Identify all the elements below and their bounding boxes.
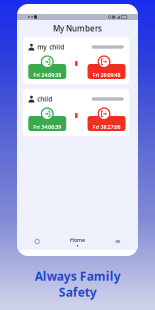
- staticText: Fri 34:06:39: [33, 123, 61, 130]
- button[interactable]: Home: [57, 233, 98, 250]
- button[interactable]: Fri 24:09:38: [28, 56, 66, 79]
- button[interactable]: Fri 34:06:39: [28, 108, 66, 131]
- staticText: child: [37, 95, 52, 103]
- staticText: Home: [70, 236, 85, 243]
- button[interactable]: Fri 26:09:48: [87, 56, 125, 79]
- staticText: Fri 24:09:38: [33, 71, 61, 78]
- staticText: Always Family Safety: [34, 268, 120, 300]
- button[interactable]: Fri 38:27:06: [87, 108, 125, 131]
- button[interactable]: Back: [17, 233, 57, 250]
- button[interactable]: Recents: [98, 233, 138, 250]
- staticText: My Numbers: [53, 23, 102, 34]
- staticText: Fri 38:27:06: [92, 123, 120, 130]
- staticText: Fri 26:09:48: [92, 71, 120, 78]
- staticText: my child: [37, 43, 64, 51]
